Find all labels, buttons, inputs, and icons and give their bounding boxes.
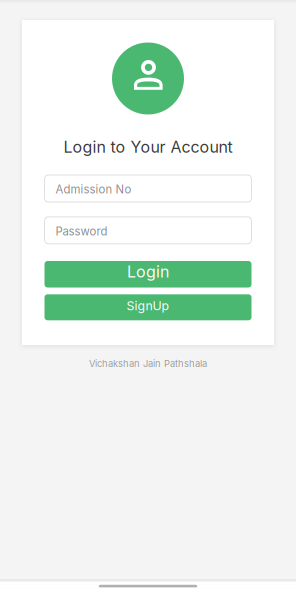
button[interactable]: SignUp (44, 294, 251, 320)
button[interactable]: Password (44, 217, 251, 244)
staticText: Login (127, 262, 169, 281)
staticText: SignUp (126, 298, 169, 313)
staticText: Password (55, 224, 107, 238)
button[interactable]: Login (44, 261, 251, 287)
staticText: Login to Your Account (63, 137, 232, 157)
staticText: Vichakshan Jain Pathshala (89, 358, 207, 369)
staticText: Admission No (55, 183, 131, 196)
button[interactable]: Admission No (44, 175, 251, 202)
